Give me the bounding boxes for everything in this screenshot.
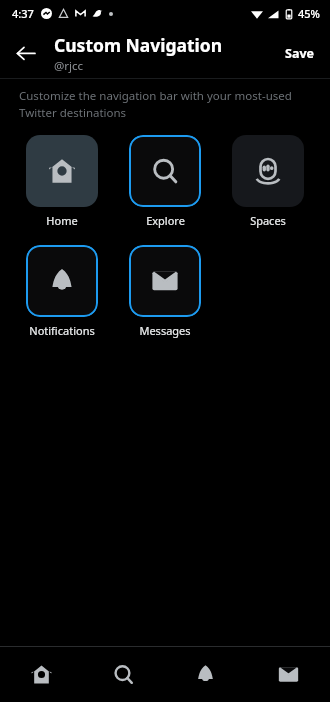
staticText: Customize the navigation bar with your m… [19, 88, 300, 120]
button[interactable]: Home [0, 647, 82, 702]
staticText: Explore [146, 213, 185, 228]
button[interactable]: Notifications [164, 647, 247, 702]
staticText: Home [46, 213, 78, 228]
button[interactable]: Explore [129, 135, 201, 207]
button[interactable]: Messages [247, 647, 330, 702]
staticText: @rjcc [54, 58, 84, 74]
staticText: Notifications [29, 323, 95, 338]
staticText: Spaces [250, 213, 286, 228]
staticText: 45% [298, 6, 320, 21]
button[interactable]: Notifications [26, 245, 98, 317]
button[interactable]: Messages [129, 245, 201, 317]
button[interactable]: Explore [82, 647, 164, 702]
button[interactable]: Home [26, 135, 98, 207]
staticText: Messages [139, 323, 191, 338]
button[interactable]: Save [277, 39, 322, 68]
button[interactable]: Spaces [232, 135, 304, 207]
staticText: Custom Navigation [54, 33, 223, 57]
button[interactable]: Back [6, 33, 46, 73]
staticText: Save [285, 45, 314, 62]
staticText: 4:37 [12, 6, 34, 21]
